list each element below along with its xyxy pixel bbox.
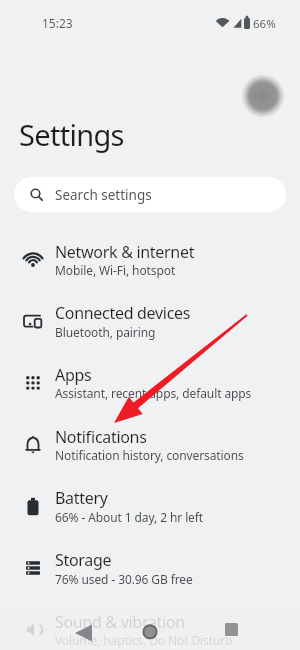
staticText: Battery: [55, 487, 108, 509]
staticText: Settings: [19, 115, 124, 154]
staticText: Connected devices: [55, 302, 191, 324]
staticText: 66%: [253, 16, 276, 32]
staticText: Search settings: [55, 186, 152, 204]
staticText: 15:23: [42, 15, 73, 31]
staticText: Notification history, conversations: [55, 447, 244, 463]
staticText: Bluetooth, pairing: [55, 324, 156, 340]
staticText: Sound & vibration: [55, 611, 185, 633]
staticText: Mobile, Wi-Fi, hotspot: [55, 262, 176, 278]
staticText: Apps: [55, 364, 92, 386]
staticText: 66% - About 1 day, 2 hr left: [55, 509, 204, 525]
staticText: Storage: [55, 549, 112, 571]
staticText: 76% used - 30.96 GB free: [55, 571, 193, 587]
staticText: Assistant, recent apps, default apps: [55, 385, 252, 401]
staticText: Notifications: [55, 426, 147, 448]
staticText: Network & internet: [55, 241, 195, 263]
staticText: Volume, haptics, Do Not Disturb: [55, 632, 233, 648]
